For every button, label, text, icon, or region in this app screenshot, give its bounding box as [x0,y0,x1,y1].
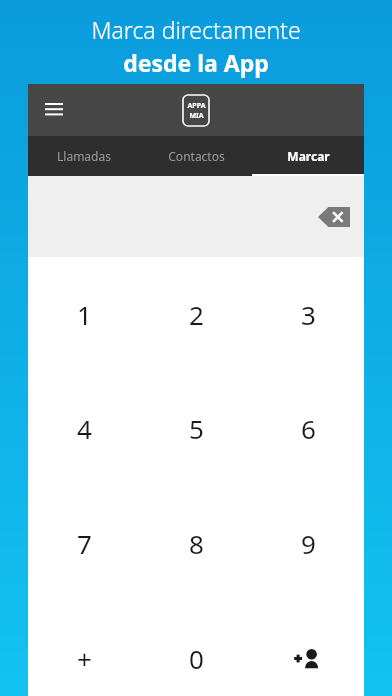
staticText: MIA [189,111,204,121]
button[interactable]: Contactos [140,136,252,176]
button[interactable]: 5 [140,371,252,486]
staticText: 4 [77,411,92,446]
staticText: 2 [189,297,204,332]
staticText: 1 [77,297,92,332]
button[interactable]: Add contact [252,601,364,696]
staticText: Marcar [287,148,330,164]
staticText: + [77,641,92,676]
staticText: Contactos [168,148,225,164]
button[interactable]: Llamadas [28,136,140,176]
staticText: desde la App [123,47,269,78]
button[interactable]: 4 [28,371,140,486]
button[interactable]: Appa Mia logo [183,95,209,126]
button[interactable]: 2 [140,257,252,371]
staticText: 3 [301,297,316,332]
staticText: 7 [77,526,92,561]
staticText: 8 [189,526,204,561]
staticText: 0 [189,641,204,676]
button[interactable]: 9 [252,486,364,601]
staticText: Marca directamente [91,14,301,45]
staticText: 9 [301,526,316,561]
staticText: Llamadas [57,148,111,164]
button[interactable]: Menu [36,92,72,128]
staticText: 5 [189,411,204,446]
button[interactable]: Backspace [312,195,356,239]
staticText: APPA [187,101,206,111]
button[interactable]: 6 [252,371,364,486]
button[interactable]: 7 [28,486,140,601]
button[interactable]: 8 [140,486,252,601]
button[interactable]: 1 [28,257,140,371]
button[interactable]: + [28,601,140,696]
button[interactable]: 0 [140,601,252,696]
button[interactable]: Marcar [252,136,364,176]
staticText: 6 [301,411,316,446]
button[interactable]: 3 [252,257,364,371]
